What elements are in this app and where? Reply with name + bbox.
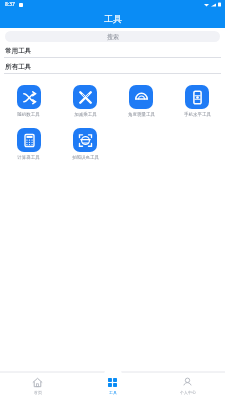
button[interactable]: 工具 — [75, 372, 150, 400]
button[interactable]: 个人中心 — [150, 372, 225, 400]
button[interactable]: 手机水平工具 — [169, 83, 225, 120]
button[interactable]: 首页 — [0, 372, 75, 400]
staticText: 工具 — [109, 390, 117, 395]
staticText: 拍照识色工具 — [72, 155, 99, 161]
button[interactable]: 随机数工具 — [0, 83, 57, 120]
staticText: 所有工具 — [5, 63, 31, 71]
staticText: 角度测量工具 — [128, 112, 155, 118]
button[interactable]: 加减乘工具 — [57, 83, 113, 120]
staticText: 手机水平工具 — [184, 112, 211, 118]
staticText: 常用工具 — [5, 47, 31, 55]
staticText: 个人中心 — [180, 390, 196, 395]
button[interactable]: 计算器工具 — [0, 126, 57, 163]
staticText: 搜索 — [107, 33, 119, 41]
staticText: 8:37 — [5, 1, 15, 8]
staticText: 计算器工具 — [17, 155, 40, 161]
staticText: 加减乘工具 — [74, 112, 97, 118]
staticText: 首页 — [34, 390, 42, 395]
button[interactable]: 搜索 — [5, 31, 220, 42]
staticText: 工具 — [104, 13, 122, 24]
button[interactable]: 角度测量工具 — [113, 83, 169, 120]
staticText: 随机数工具 — [17, 112, 40, 118]
button[interactable]: 拍照识色工具 — [57, 126, 113, 163]
